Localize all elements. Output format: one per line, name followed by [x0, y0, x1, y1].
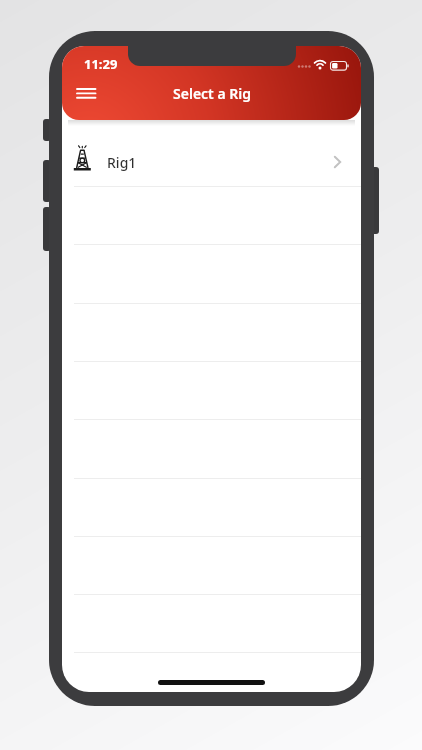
- staticText: 11:29: [84, 55, 118, 73]
- button[interactable]: [68, 80, 104, 106]
- staticText: Rig1: [107, 153, 137, 172]
- button[interactable]: Rig1: [62, 128, 361, 186]
- staticText: Select a Rig: [173, 84, 251, 103]
